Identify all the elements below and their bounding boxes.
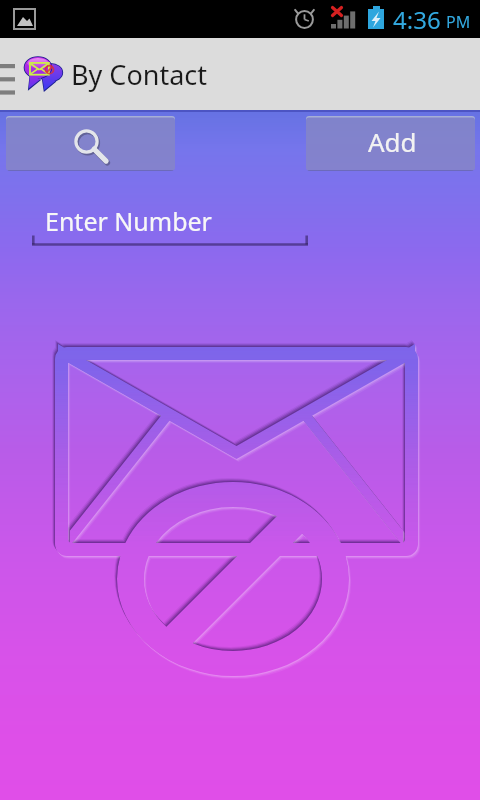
staticText: By Contact <box>71 56 208 93</box>
button[interactable]: Search <box>6 116 175 173</box>
staticText: 4:36 <box>393 3 441 36</box>
staticText: Add <box>368 124 417 159</box>
button[interactable]: Menu <box>0 38 22 110</box>
staticText: Enter Number <box>45 204 212 238</box>
staticText: PM <box>446 11 471 33</box>
button[interactable]: Add <box>306 116 475 173</box>
